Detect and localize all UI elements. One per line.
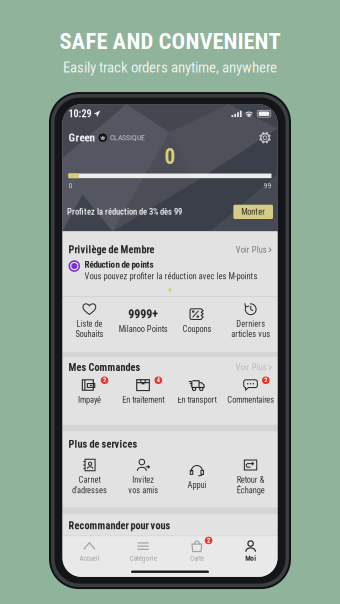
button[interactable]: Moi [224, 540, 278, 563]
staticText: Invitez [132, 475, 154, 485]
button[interactable]: Liste de [62, 302, 116, 339]
staticText: Recommander pour vous [68, 520, 170, 532]
button[interactable]: Coupons [170, 308, 224, 334]
staticText: Plus de services [68, 438, 137, 450]
button[interactable]: 4 [116, 378, 170, 405]
staticText: 2 [207, 537, 210, 544]
button[interactable]: Appui [170, 464, 224, 490]
staticText: Privilège de Membre [68, 244, 154, 256]
staticText: 4 [157, 376, 160, 384]
staticText: CLASSIQUE [110, 133, 145, 142]
staticText: Accueil [79, 554, 99, 563]
button[interactable]: 2 [170, 540, 224, 563]
staticText: Green [68, 131, 95, 144]
button[interactable]: Catégorie [116, 540, 170, 563]
button[interactable]: Invitez [116, 459, 170, 495]
staticText: Carte [190, 554, 204, 563]
staticText: Appui [187, 480, 206, 490]
button[interactable]: Monter [233, 205, 273, 219]
staticText: Commentaires [227, 395, 274, 405]
staticText: 0 [68, 181, 72, 190]
button[interactable]: Voir Plus [236, 363, 271, 372]
button[interactable]: 2 [62, 378, 116, 405]
staticText: Retour & [237, 475, 265, 485]
staticText: Monter [241, 207, 265, 217]
button[interactable]: Réduction de points [68, 259, 271, 281]
staticText: Impayé [78, 395, 101, 405]
staticText: Easily track orders anytime, anywhere [63, 59, 277, 76]
staticText: Souhaits [75, 329, 103, 339]
button[interactable]: Carnet [62, 459, 116, 495]
staticText: En transport [177, 395, 216, 405]
button[interactable]: En transport [170, 378, 224, 405]
staticText: vos amis [128, 485, 158, 495]
button[interactable]: 9999+ [116, 308, 170, 334]
button[interactable]: Derniers [224, 302, 278, 339]
button[interactable]: Voir Plus [236, 245, 271, 255]
staticText: Voir Plus [236, 245, 267, 255]
button[interactable]: Green [68, 131, 271, 145]
staticText: Moi [245, 554, 256, 563]
staticText: 9999+ [128, 307, 158, 321]
staticText: articles vus [231, 329, 270, 339]
staticText: Vous pouvez profiter la réduction avec l… [85, 271, 258, 281]
staticText: Voir Plus [236, 363, 267, 372]
staticText: 2 [103, 376, 106, 384]
staticText: Profitez la réduction de 3% dès 99 [67, 207, 182, 217]
staticText: 10:29 [68, 108, 91, 120]
button[interactable]: 2 [224, 378, 278, 405]
staticText: 99 [263, 181, 271, 190]
staticText: Coupons [182, 324, 211, 334]
staticText: 0 [164, 144, 175, 169]
staticText: Réduction de points [85, 259, 154, 270]
staticText: Milanoo Points [119, 324, 168, 334]
staticText: Échange [237, 485, 265, 495]
staticText: Derniers [236, 319, 265, 329]
button[interactable]: Accueil [62, 540, 116, 563]
button[interactable]: Retour & [224, 459, 278, 495]
staticText: Carnet [78, 475, 100, 485]
staticText: Catégorie [130, 554, 157, 563]
staticText: Liste de [76, 319, 102, 329]
staticText: Mes Commandes [68, 361, 140, 373]
staticText: SAFE AND CONVENIENT [59, 28, 280, 55]
staticText: 2 [264, 376, 267, 384]
staticText: En traitement [122, 395, 164, 405]
staticText: d'adresses [72, 485, 107, 495]
